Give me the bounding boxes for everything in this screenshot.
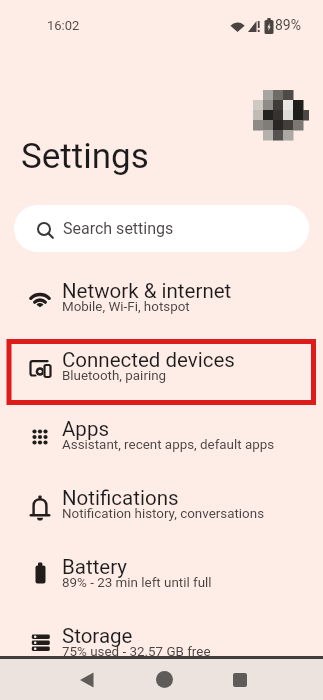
- staticText: Settings: [21, 136, 149, 177]
- button[interactable]: Connected devices: [0, 333, 323, 402]
- button[interactable]: Battery: [0, 540, 323, 609]
- button[interactable]: [217, 659, 263, 700]
- staticText: Search settings: [63, 219, 174, 238]
- staticText: Mobile, Wi-Fi, hotspot: [62, 299, 190, 315]
- staticText: Assistant, recent apps, default apps: [62, 437, 275, 453]
- staticText: Notifications: [62, 486, 179, 510]
- button[interactable]: Apps: [0, 402, 323, 471]
- staticText: Connected devices: [62, 348, 235, 372]
- staticText: 75% used - 32.57 GB free: [62, 644, 211, 660]
- button[interactable]: Notifications: [0, 471, 323, 540]
- staticText: Network & internet: [62, 279, 232, 303]
- staticText: 89%: [275, 17, 301, 33]
- staticText: 89% - 23 min left until full: [62, 575, 212, 591]
- staticText: Battery: [62, 555, 128, 579]
- staticText: Notification history, conversations: [62, 506, 265, 522]
- button[interactable]: [253, 90, 309, 140]
- staticText: Bluetooth, pairing: [62, 368, 167, 384]
- staticText: Apps: [62, 417, 109, 441]
- button[interactable]: [64, 659, 110, 700]
- button[interactable]: [141, 659, 187, 700]
- button[interactable]: Search settings: [14, 205, 309, 252]
- button[interactable]: Network & internet: [0, 264, 323, 333]
- button[interactable]: Storage: [0, 609, 323, 678]
- staticText: Storage: [62, 624, 133, 648]
- staticText: 16:02: [47, 18, 80, 33]
